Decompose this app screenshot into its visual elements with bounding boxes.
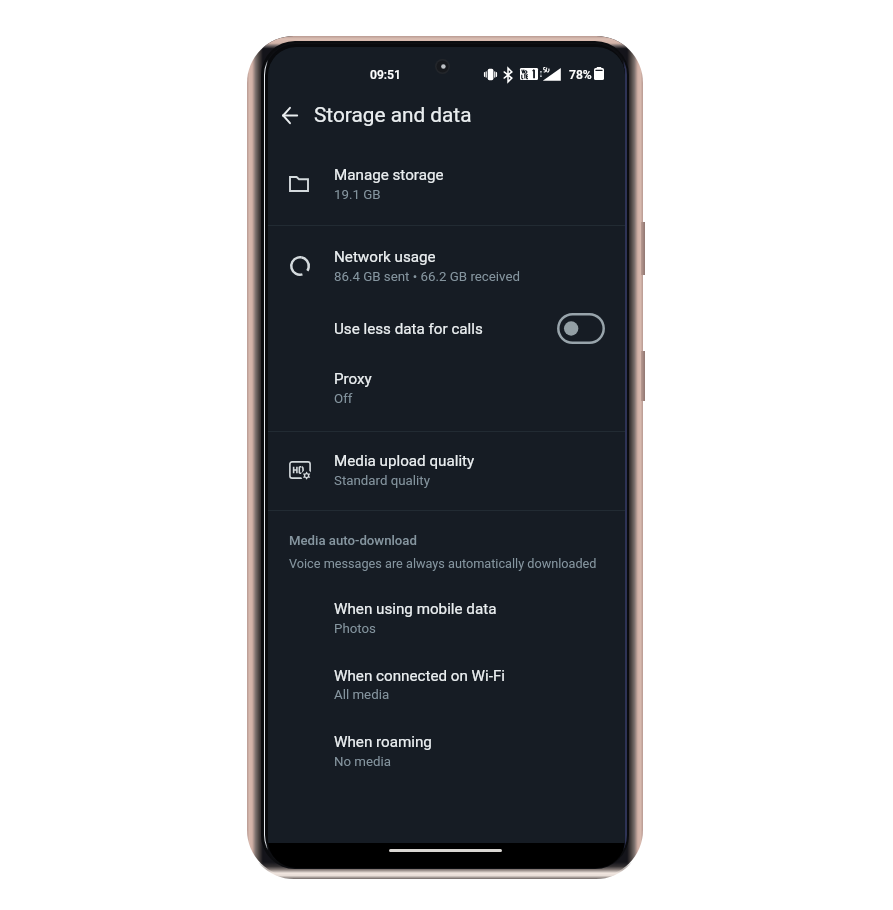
staticText: Storage and data	[314, 103, 472, 127]
button[interactable]	[268, 150, 625, 225]
staticText: When connected on Wi-Fi	[334, 667, 506, 685]
button[interactable]	[268, 717, 625, 784]
staticText: Media upload quality	[334, 452, 475, 470]
staticText: 09:51	[370, 68, 401, 82]
staticText: Off	[334, 391, 353, 407]
staticText: Network usage	[334, 248, 436, 266]
button[interactable]	[268, 302, 625, 350]
staticText: 86.4 GB sent • 66.2 GB received	[334, 269, 521, 285]
staticText: When using mobile data	[334, 600, 497, 618]
staticText: Proxy	[334, 370, 372, 388]
staticText: 19.1 GB	[334, 187, 381, 203]
staticText: Use less data for calls	[334, 320, 483, 338]
staticText: Manage storage	[334, 166, 444, 184]
button[interactable]	[268, 584, 625, 651]
button[interactable]: Back	[268, 93, 312, 137]
button[interactable]	[268, 651, 625, 718]
staticText: Standard quality	[334, 473, 430, 489]
button[interactable]	[268, 350, 625, 431]
staticText: Media auto-download	[289, 533, 417, 548]
staticText: Photos	[334, 621, 376, 637]
staticText: All media	[334, 687, 390, 703]
staticText: No media	[334, 754, 392, 770]
staticText: When roaming	[334, 733, 432, 751]
staticText: 78%	[569, 68, 592, 82]
staticText: Voice messages are always automatically …	[289, 556, 597, 571]
button[interactable]	[268, 226, 625, 302]
button[interactable]: Use less data for calls toggle	[557, 313, 605, 344]
button[interactable]	[268, 432, 625, 510]
